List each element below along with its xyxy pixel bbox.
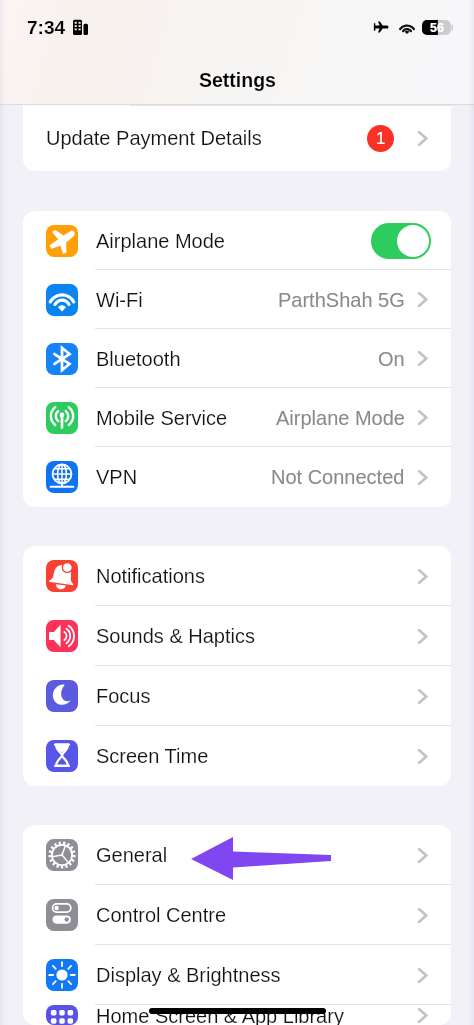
staticText: Not Connected	[271, 466, 405, 488]
staticText: General	[96, 844, 168, 866]
staticText: Mobile Service	[96, 407, 228, 429]
staticText: Bluetooth	[96, 348, 181, 370]
staticText: ParthShah 5G	[278, 289, 405, 311]
staticText: VPN	[96, 466, 138, 488]
button[interactable]: General	[23, 825, 451, 885]
button[interactable]: Screen Time	[23, 726, 451, 786]
other: Wi-Fi	[398, 20, 416, 34]
button[interactable]: Update Payment Details	[46, 105, 428, 171]
staticText: Focus	[96, 685, 151, 707]
button[interactable]: VPN	[23, 447, 451, 507]
button[interactable]: Focus	[23, 666, 451, 726]
staticText: Control Centre	[96, 904, 227, 926]
button[interactable]: Toggle Airplane Mode	[371, 223, 431, 259]
staticText: 7:34	[27, 17, 66, 38]
other: Battery 56 percent	[422, 20, 453, 35]
button[interactable]: Bluetooth	[23, 329, 451, 388]
button[interactable]: Notifications	[23, 546, 451, 606]
button[interactable]: Mobile Service	[23, 388, 451, 447]
staticText: On	[378, 348, 405, 370]
button[interactable]: Sounds & Haptics	[23, 606, 451, 666]
button[interactable]: Airplane Mode	[23, 211, 451, 270]
staticText: Airplane Mode	[276, 407, 405, 429]
button[interactable]: Control Centre	[23, 885, 451, 945]
staticText: Settings	[199, 69, 276, 91]
staticText: Update Payment Details	[46, 127, 262, 149]
staticText: Home Screen & App Library	[96, 1005, 344, 1025]
button[interactable]: Home Screen & App Library	[23, 1005, 451, 1025]
staticText: Airplane Mode	[96, 230, 225, 252]
staticText: 56	[430, 21, 444, 35]
staticText: Wi-Fi	[96, 289, 143, 311]
staticText: Display & Brightness	[96, 964, 281, 986]
button[interactable]: Wi-Fi	[23, 270, 451, 329]
staticText: Sounds & Haptics	[96, 625, 255, 647]
staticText: Screen Time	[96, 745, 209, 767]
staticText: 1	[376, 129, 386, 148]
button[interactable]: Display & Brightness	[23, 945, 451, 1005]
staticText: Notifications	[96, 565, 205, 587]
other: Airplane mode on	[373, 19, 389, 35]
